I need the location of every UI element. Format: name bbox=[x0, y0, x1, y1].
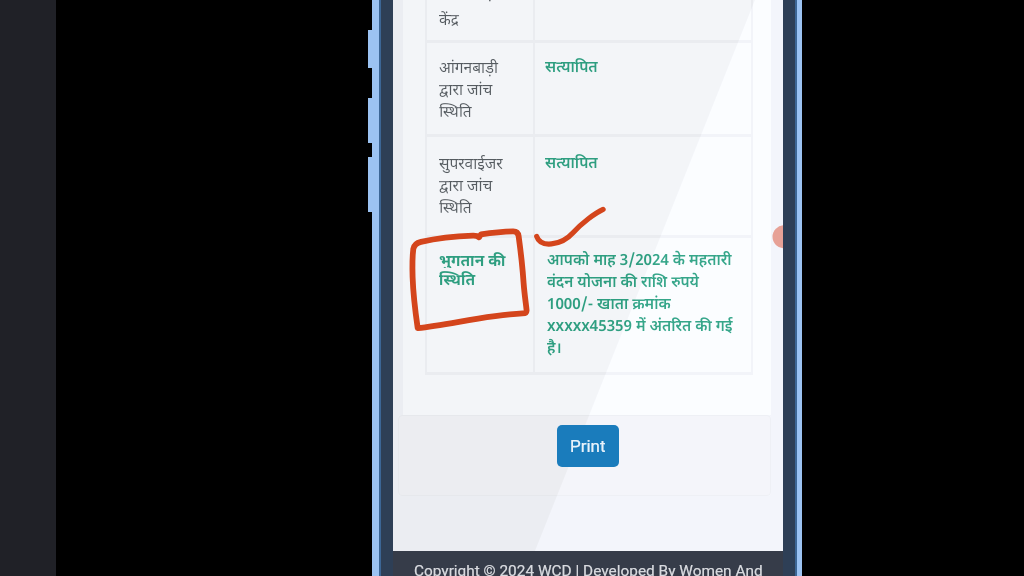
staticText: स्थिति bbox=[439, 268, 476, 287]
staticText: द्वारा जांच bbox=[439, 174, 493, 195]
staticText: भुगतान की bbox=[439, 249, 506, 268]
other: Highlighted payment status bbox=[407, 224, 535, 338]
staticText: द्वारा जांच bbox=[439, 78, 493, 99]
button[interactable]: केंद्र bbox=[427, 0, 751, 40]
staticText: केंद्र bbox=[439, 8, 459, 29]
staticText: है। bbox=[547, 337, 562, 358]
button[interactable]: Print bbox=[557, 425, 619, 467]
staticText: वंदन योजना की राशि रुपये bbox=[547, 271, 699, 292]
staticText: स्थिति bbox=[439, 100, 472, 121]
staticText: सुपरवाईजर bbox=[439, 152, 503, 173]
staticText: xxxxx45359 में अंतरित की गई bbox=[547, 315, 733, 336]
staticText: आंगनबाड़ी केंद्र bbox=[439, 0, 522, 2]
button[interactable]: Copyright © 2024 WCD | Developed By Wome… bbox=[393, 551, 783, 576]
button[interactable]: आंगनबाड़ी bbox=[427, 42, 751, 134]
staticText: आपको माह 3/2024 के महतारी bbox=[547, 249, 732, 270]
staticText: Copyright © 2024 WCD | Developed By Wome… bbox=[414, 562, 763, 576]
staticText: 1000/- खाता क्रमांक bbox=[547, 293, 671, 314]
button[interactable]: सुपरवाईजर bbox=[427, 136, 751, 235]
button[interactable]: भुगतान की bbox=[427, 237, 751, 372]
staticText: सत्यापित bbox=[545, 151, 598, 172]
staticText: आंगनबाड़ी bbox=[439, 56, 499, 77]
staticText: Print bbox=[570, 436, 606, 456]
staticText: स्थिति bbox=[439, 196, 472, 217]
staticText: सत्यापित bbox=[545, 55, 598, 76]
